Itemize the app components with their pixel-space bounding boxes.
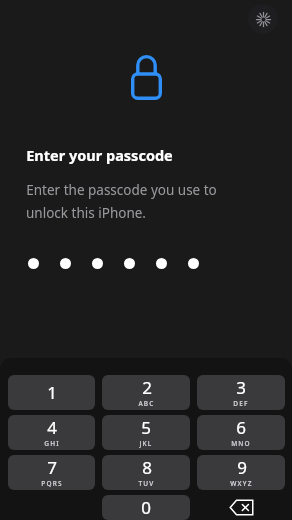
staticText: 9 xyxy=(237,456,247,479)
staticText: TUV xyxy=(138,479,155,488)
staticText: GHI xyxy=(44,439,60,448)
button[interactable]: 4 xyxy=(8,415,95,450)
button[interactable]: 5 xyxy=(102,415,190,450)
staticText: 0 xyxy=(141,496,151,519)
staticText: WXYZ xyxy=(230,479,253,488)
staticText: JKL xyxy=(139,439,153,448)
button[interactable]: 3 xyxy=(197,375,285,410)
staticText: 4 xyxy=(47,416,57,439)
button[interactable]: 8 xyxy=(102,455,190,490)
button[interactable]: Backspace xyxy=(197,495,285,520)
staticText: PQRS xyxy=(41,479,63,488)
staticText: 8 xyxy=(142,456,152,479)
staticText: 1 xyxy=(47,381,57,404)
staticText: 7 xyxy=(47,456,57,479)
staticText: 3 xyxy=(236,376,246,399)
button[interactable]: 1 xyxy=(8,375,95,410)
staticText: 6 xyxy=(236,416,246,439)
button[interactable]: 2 xyxy=(102,375,190,410)
staticText: unlock this iPhone. xyxy=(26,204,146,222)
button[interactable]: 0 xyxy=(102,495,190,520)
staticText: ABC xyxy=(138,399,155,408)
button[interactable]: Loading xyxy=(248,4,278,34)
staticText: DEF xyxy=(233,399,249,408)
button[interactable]: 9 xyxy=(197,455,285,490)
staticText: 5 xyxy=(141,416,151,439)
button[interactable]: 7 xyxy=(8,455,95,490)
button[interactable]: 6 xyxy=(197,415,285,450)
staticText: Enter the passcode you use to xyxy=(26,181,217,199)
staticText: MNO xyxy=(231,439,251,448)
staticText: 2 xyxy=(142,376,152,399)
staticText: Enter your passcode xyxy=(26,145,173,165)
